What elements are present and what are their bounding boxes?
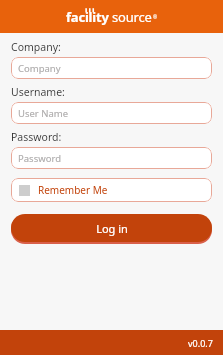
- staticText: v0.0.7: [188, 337, 213, 349]
- staticText: Remember Me: [38, 183, 108, 197]
- staticText: Company:: [11, 40, 61, 54]
- staticText: ®: [153, 14, 158, 21]
- staticText: Company: [18, 62, 61, 75]
- button[interactable]: Log in: [11, 214, 212, 242]
- button[interactable]: Company: [11, 57, 212, 79]
- staticText: User Name: [18, 107, 69, 120]
- button[interactable]: User Name: [11, 102, 212, 124]
- staticText: facility: [66, 8, 109, 26]
- staticText: Password: [18, 152, 61, 165]
- button[interactable]: Password: [11, 147, 212, 169]
- staticText: Username:: [11, 85, 65, 99]
- staticText: Password:: [11, 130, 62, 144]
- staticText: Log in: [96, 221, 128, 236]
- button[interactable]: Remember Me: [11, 178, 212, 202]
- staticText: source: [112, 8, 152, 26]
